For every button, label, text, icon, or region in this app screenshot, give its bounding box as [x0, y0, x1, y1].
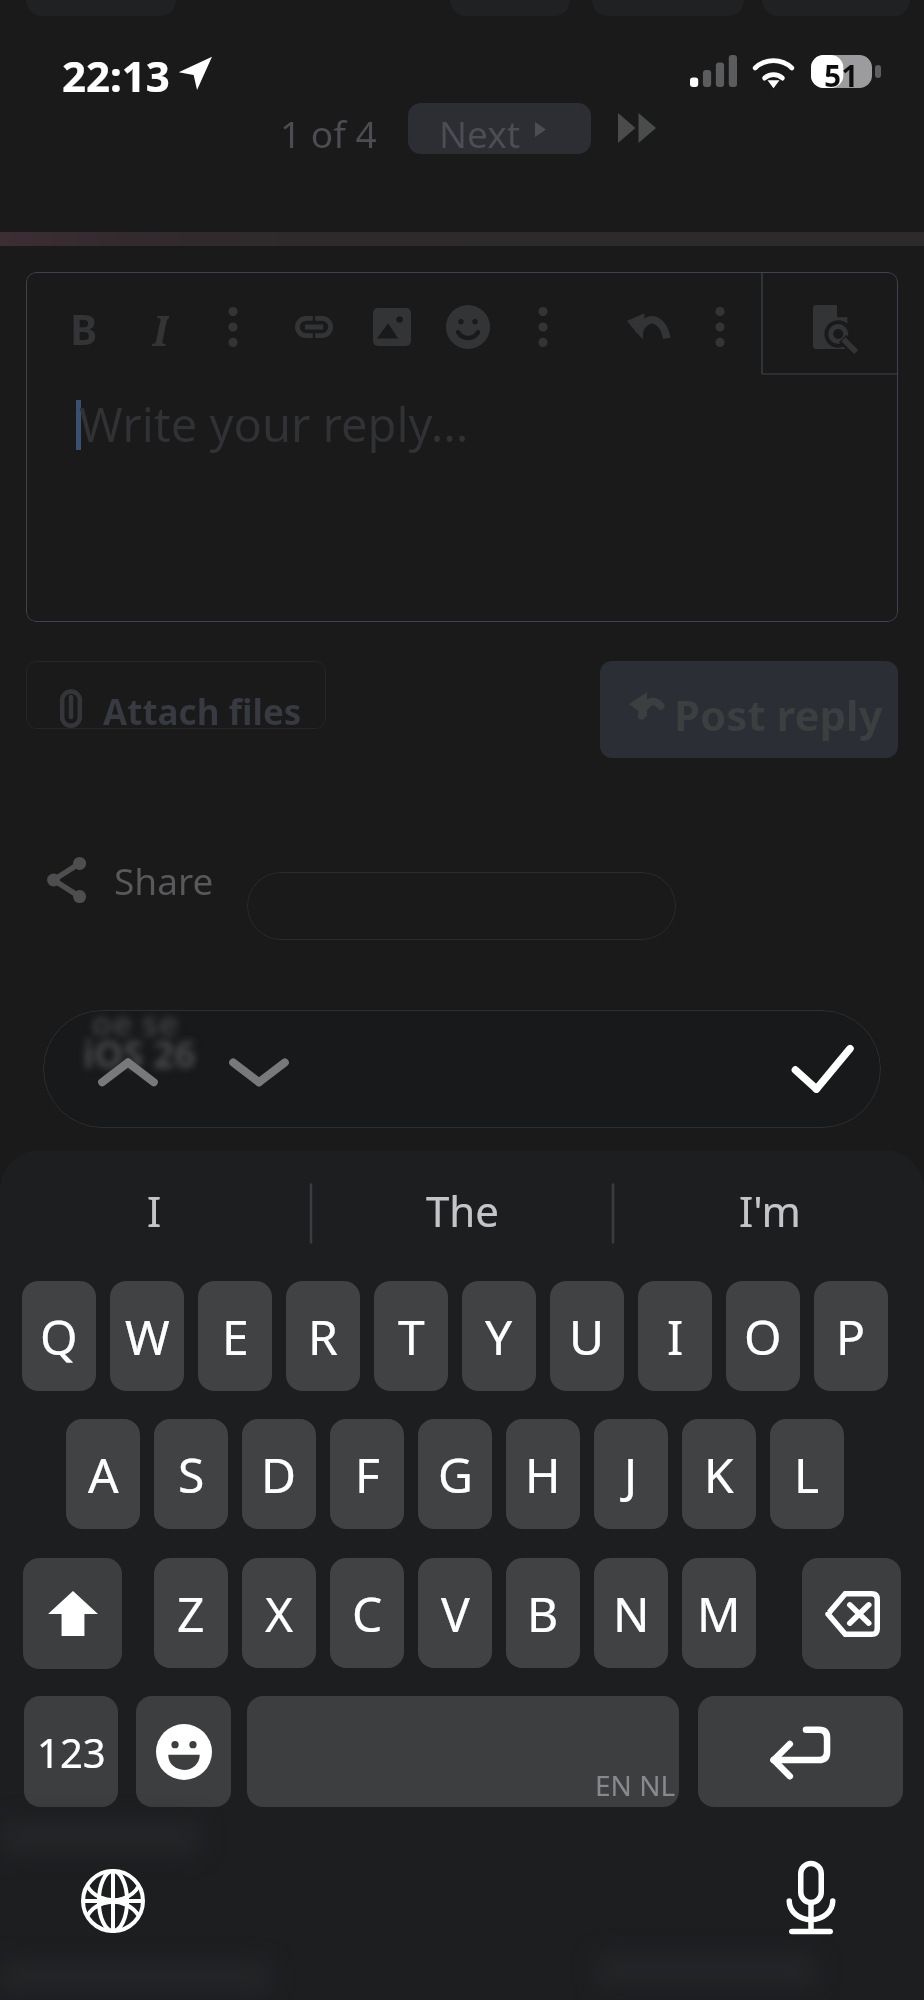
staticText: Q	[40, 1304, 78, 1369]
staticText: Next	[439, 108, 521, 154]
staticText: I	[152, 301, 169, 353]
staticText: G	[438, 1442, 473, 1507]
staticText: EN NL	[595, 1766, 676, 1804]
staticText: M	[697, 1581, 741, 1646]
button[interactable]: B	[506, 1558, 580, 1668]
button[interactable]: Share	[46, 855, 214, 905]
button[interactable]: S	[154, 1419, 228, 1529]
button[interactable]: F	[330, 1419, 404, 1529]
button[interactable]: Post reply	[600, 661, 898, 758]
staticText: H	[525, 1442, 561, 1507]
staticText: L	[794, 1442, 820, 1507]
button[interactable]: J	[594, 1419, 668, 1529]
button[interactable]: Z	[154, 1558, 228, 1668]
staticText: Y	[485, 1304, 513, 1369]
button[interactable]: V	[418, 1558, 492, 1668]
button[interactable]: W	[110, 1281, 184, 1391]
button[interactable]: Emoji	[136, 1696, 231, 1807]
button[interactable]: M	[682, 1558, 756, 1668]
button[interactable]: Undo	[620, 304, 674, 350]
staticText: I	[147, 1182, 162, 1239]
button[interactable]: U	[550, 1281, 624, 1391]
button[interactable]: T	[374, 1281, 448, 1391]
staticText: X	[265, 1581, 294, 1646]
button[interactable]: Space	[247, 1696, 679, 1807]
button[interactable]: Insert image	[369, 304, 415, 350]
button[interactable]: Insert link	[291, 307, 337, 347]
staticText: Post reply	[674, 686, 883, 743]
staticText: Share	[114, 855, 214, 905]
button[interactable]: D	[242, 1419, 316, 1529]
staticText: B	[70, 301, 98, 353]
staticText: A	[88, 1442, 119, 1507]
staticText: W	[125, 1304, 170, 1369]
button[interactable]	[247, 872, 676, 940]
button[interactable]: H	[506, 1419, 580, 1529]
button[interactable]: X	[242, 1558, 316, 1668]
button[interactable]: Preview	[806, 299, 860, 355]
staticText: K	[704, 1442, 734, 1507]
staticText: 51	[824, 55, 859, 88]
button[interactable]: Change keyboard	[81, 1869, 145, 1933]
button[interactable]: E	[198, 1281, 272, 1391]
button[interactable]: The	[308, 1150, 616, 1270]
staticText: I	[667, 1304, 684, 1369]
button[interactable]: O	[726, 1281, 800, 1391]
staticText: 123	[37, 1725, 106, 1779]
button[interactable]: I	[0, 1150, 308, 1270]
staticText: iOS 26	[83, 1028, 196, 1078]
staticText: N	[613, 1581, 650, 1646]
button[interactable]: Previous field	[90, 1050, 166, 1102]
button[interactable]: I'm	[616, 1150, 924, 1270]
staticText: S	[178, 1442, 205, 1507]
button[interactable]: I	[133, 301, 187, 353]
staticText: Z	[177, 1581, 205, 1646]
button[interactable]: A	[66, 1419, 140, 1529]
button[interactable]: R	[286, 1281, 360, 1391]
button[interactable]: Attach files	[26, 661, 326, 729]
staticText: oe se	[91, 1010, 179, 1046]
button[interactable]: Voice input	[779, 1862, 843, 1940]
button[interactable]: L	[770, 1419, 844, 1529]
button[interactable]: K	[682, 1419, 756, 1529]
staticText: The	[426, 1182, 499, 1239]
button[interactable]: N	[594, 1558, 668, 1668]
button[interactable]: B	[57, 301, 111, 353]
other: Share	[46, 857, 88, 903]
button[interactable]: Insert emoji	[443, 302, 493, 352]
button[interactable]: Shift	[23, 1558, 122, 1669]
staticText: U	[569, 1304, 605, 1369]
staticText: E	[222, 1304, 249, 1369]
button[interactable]: More options	[526, 304, 560, 350]
staticText: T	[398, 1304, 425, 1369]
button[interactable]: Done	[787, 1042, 857, 1098]
button[interactable]: More options	[703, 304, 737, 350]
staticText: J	[624, 1442, 638, 1507]
staticText: 22:13	[62, 47, 170, 104]
staticText: Attach files	[103, 688, 302, 729]
staticText: D	[261, 1442, 297, 1507]
button[interactable]: Q	[22, 1281, 96, 1391]
staticText: O	[744, 1304, 782, 1369]
button[interactable]: Next	[408, 103, 591, 154]
staticText: 1 of 4	[280, 108, 377, 158]
button[interactable]: Return	[698, 1696, 903, 1807]
staticText: P	[836, 1304, 866, 1369]
staticText: Write your reply...	[79, 392, 469, 456]
button[interactable]: 123	[24, 1696, 118, 1807]
button[interactable]: Next field	[221, 1050, 297, 1102]
button[interactable]: C	[330, 1558, 404, 1668]
button[interactable]: Backspace	[802, 1558, 901, 1669]
button[interactable]: G	[418, 1419, 492, 1529]
button[interactable]: P	[814, 1281, 888, 1391]
button[interactable]: More options	[216, 304, 250, 350]
staticText: V	[441, 1581, 470, 1646]
staticText: R	[308, 1304, 338, 1369]
staticText: C	[352, 1581, 383, 1646]
staticText: F	[355, 1442, 380, 1507]
button[interactable]: I	[638, 1281, 712, 1391]
staticText: I'm	[739, 1182, 801, 1239]
button[interactable]: Y	[462, 1281, 536, 1391]
staticText: B	[527, 1581, 559, 1646]
other: Fast forward	[618, 113, 656, 143]
